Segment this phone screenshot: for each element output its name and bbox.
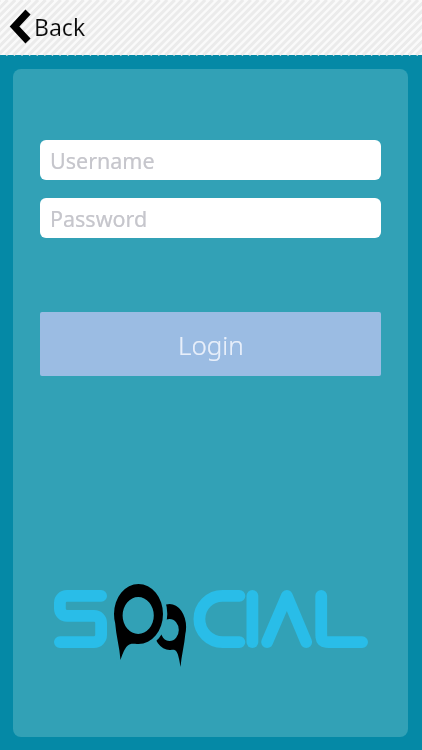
button[interactable]: Back	[4, 8, 96, 45]
button[interactable]: Username	[40, 140, 381, 180]
staticText: Username	[50, 146, 155, 175]
staticText: Back	[34, 11, 86, 42]
staticText: Password	[50, 204, 148, 233]
button[interactable]: Login	[40, 312, 381, 376]
button[interactable]: Password	[40, 198, 381, 238]
staticText: Login	[178, 327, 244, 362]
